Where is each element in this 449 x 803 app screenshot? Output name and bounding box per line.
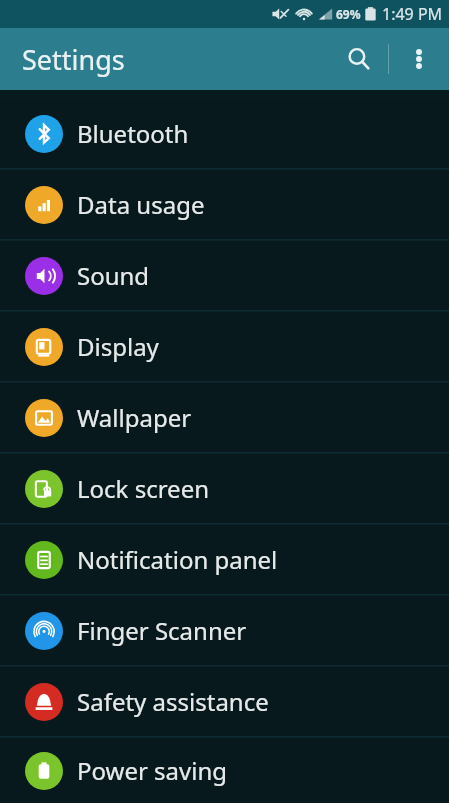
button[interactable]: Sound [0,241,449,310]
button[interactable]: Data usage [0,170,449,239]
button[interactable]: Search [330,28,388,90]
button[interactable]: Power saving [0,738,449,803]
button[interactable]: Bluetooth [0,99,449,168]
button[interactable]: Finger Scanner [0,596,449,665]
staticText: Lock screen [77,472,210,505]
staticText: 1:49 PM [382,3,443,25]
staticText: Sound [77,259,150,292]
button[interactable]: Display [0,312,449,381]
button[interactable]: Lock screen [0,454,449,523]
staticText: Bluetooth [77,117,189,150]
staticText: Power saving [77,754,228,787]
button[interactable]: Safety assistance [0,667,449,736]
staticText: Settings [22,41,125,78]
staticText: 69% [336,6,361,22]
staticText: Wallpaper [77,401,192,434]
staticText: Notification panel [77,543,278,576]
button[interactable]: More options [389,28,449,90]
staticText: Display [77,330,159,363]
staticText: Finger Scanner [77,614,247,647]
button[interactable]: Notification panel [0,525,449,594]
button[interactable]: Wallpaper [0,383,449,452]
staticText: Data usage [77,188,205,221]
staticText: Safety assistance [77,685,269,718]
